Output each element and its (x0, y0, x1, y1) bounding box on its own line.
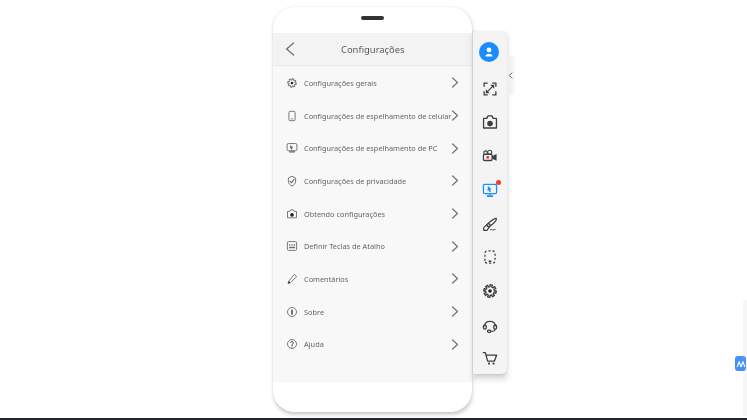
staticText: Comentários (304, 274, 451, 284)
staticText: Obtendo configurações (304, 209, 451, 219)
button[interactable]: App badge (735, 356, 746, 371)
button[interactable]: Configurações de espelhamento de PC (273, 132, 472, 164)
button[interactable]: Account (479, 42, 499, 62)
button[interactable]: Remote control (473, 173, 507, 207)
staticText: Sobre (304, 307, 451, 317)
button[interactable]: Configurações gerais (273, 66, 472, 99)
button[interactable]: Collapse toolbar (507, 56, 515, 95)
staticText: Ajuda (304, 339, 451, 349)
button[interactable]: Obtendo configurações (273, 197, 472, 230)
button[interactable]: Back (277, 33, 303, 65)
button[interactable]: Support (473, 308, 507, 342)
staticText: Configurações (341, 43, 405, 56)
button[interactable]: Record (473, 139, 507, 173)
button[interactable]: Annotate (473, 207, 507, 241)
button[interactable]: Ajuda (273, 328, 472, 360)
button[interactable]: Sobre (273, 295, 472, 328)
staticText: Configurações de espelhamento de PC (304, 143, 451, 153)
button[interactable]: Store (473, 341, 507, 374)
staticText: Definir Teclas de Atalho (304, 241, 451, 251)
button[interactable]: Configurações de espelhamento de celular (273, 99, 472, 132)
button[interactable]: Configurações de privacidade (273, 164, 472, 197)
staticText: Configurações de espelhamento de celular (304, 111, 451, 121)
button[interactable]: Definir Teclas de Atalho (273, 230, 472, 262)
staticText: Configurações gerais (304, 78, 451, 88)
button[interactable]: Full screen (473, 72, 507, 106)
staticText: Configurações de privacidade (304, 176, 451, 186)
button[interactable]: Select region (473, 240, 507, 274)
button[interactable]: Settings (473, 274, 507, 308)
button[interactable]: Screenshot (473, 105, 507, 139)
button[interactable]: Comentários (273, 262, 472, 295)
